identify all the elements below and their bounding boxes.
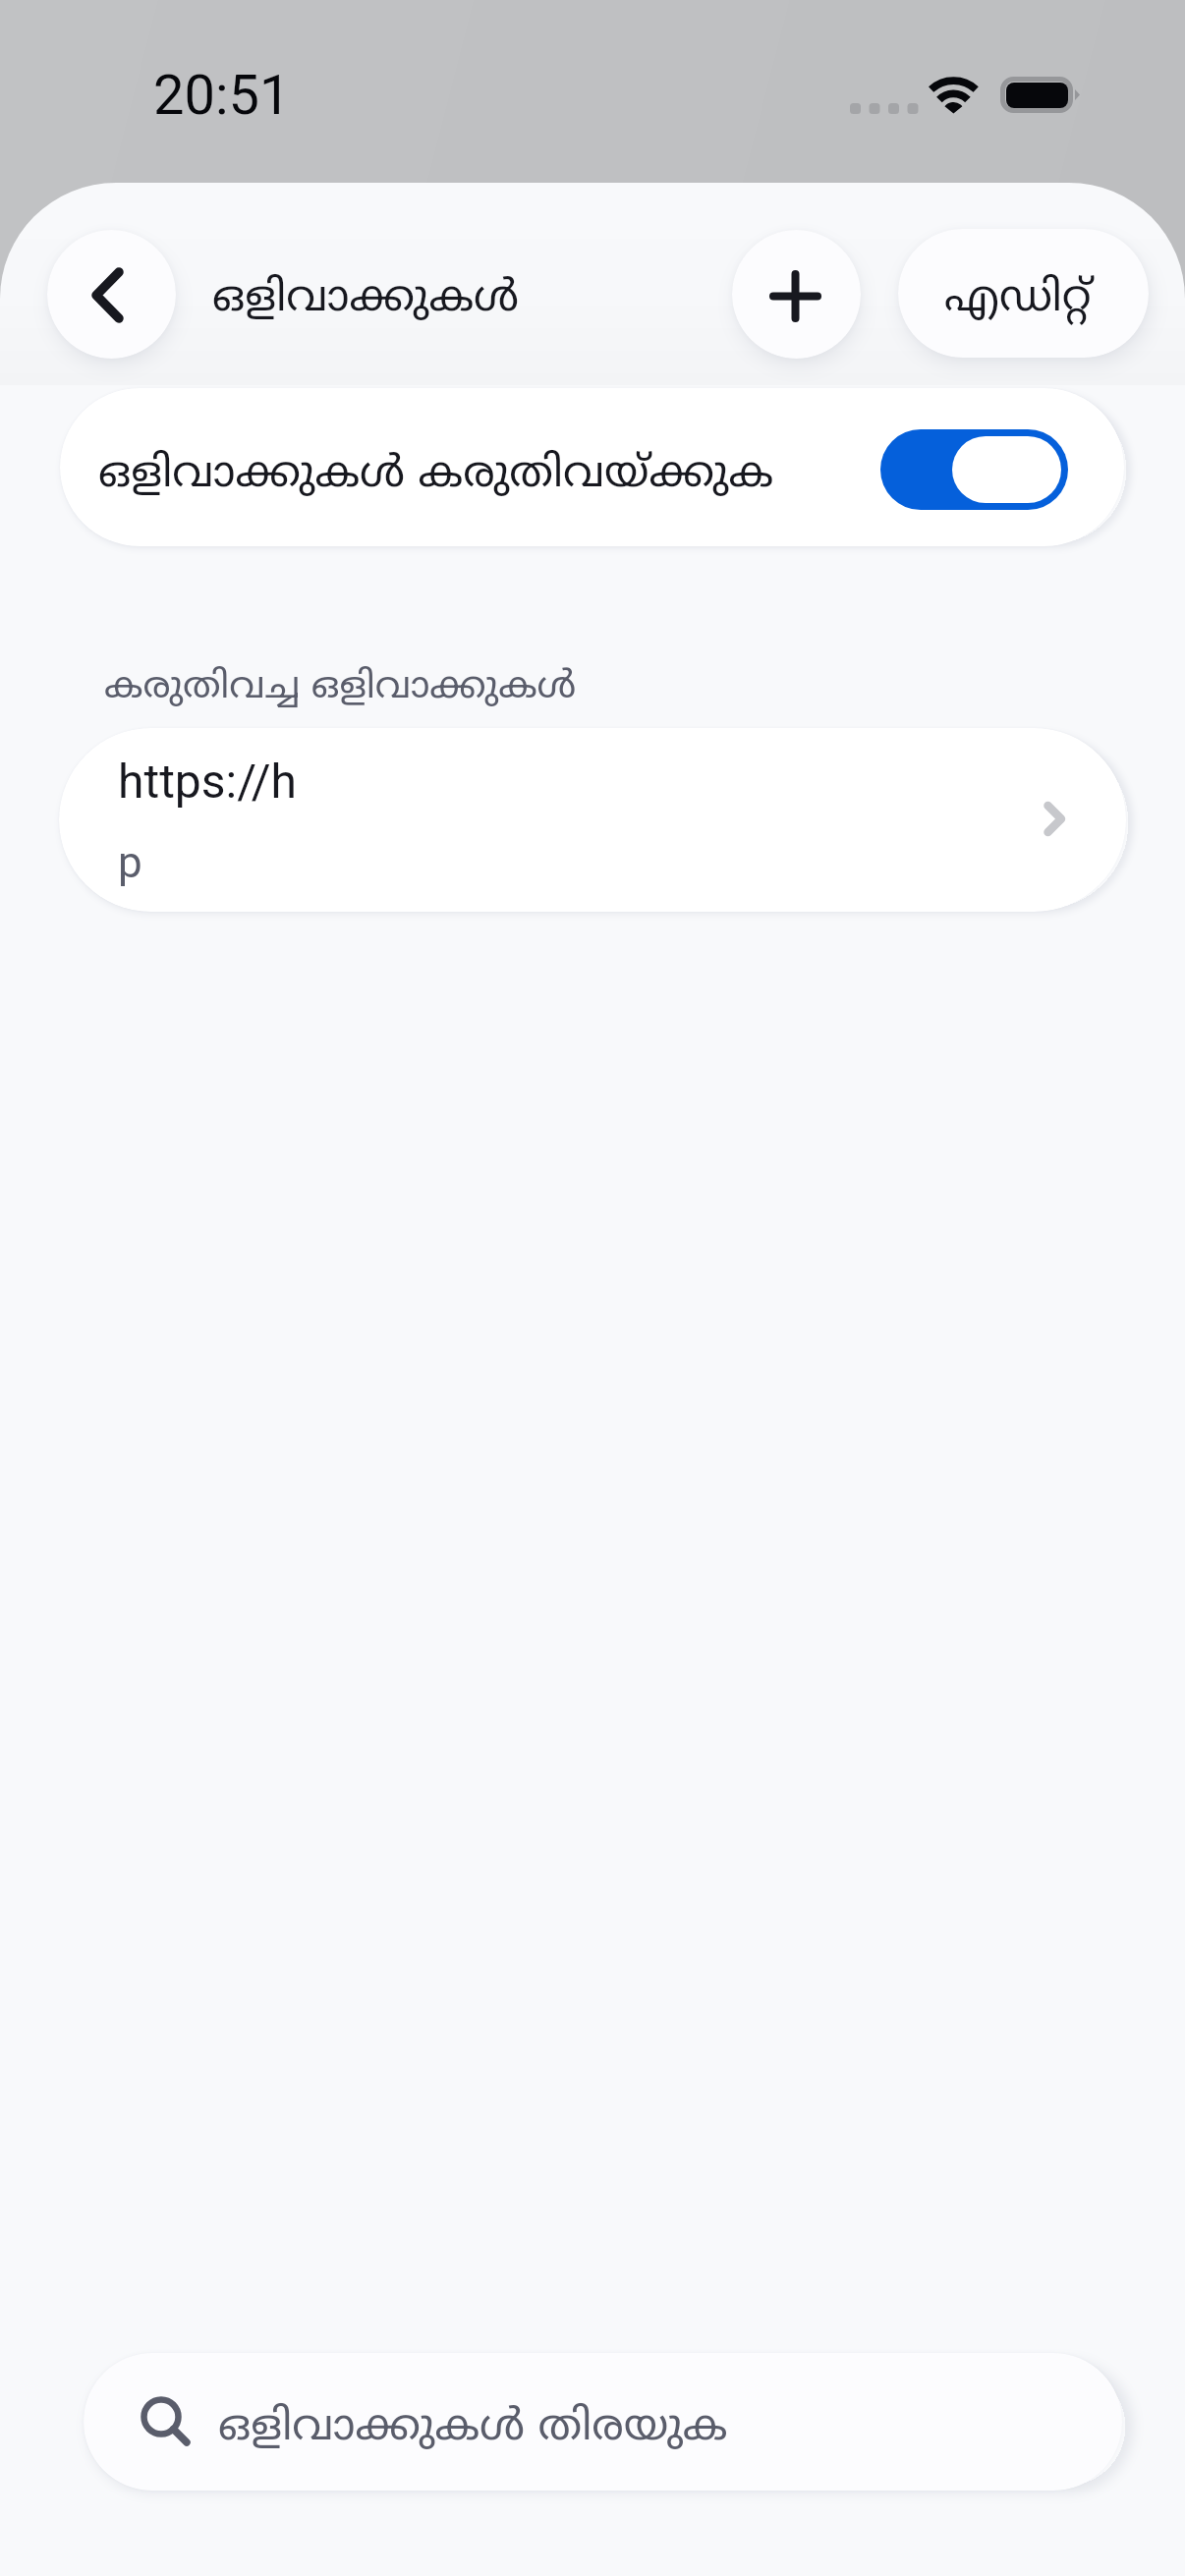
staticText: ഒളിവാക്കുകൾ — [212, 273, 520, 327]
button[interactable]: https://h — [59, 728, 1126, 912]
button[interactable]: Save passwords toggle, on — [880, 429, 1068, 510]
button[interactable]: ഒളിവാക്കുകൾ കരുതിവയ്ക്കുക — [60, 388, 1124, 546]
staticText: ഒളിവാക്കുകൾ തിരയുക — [218, 2402, 728, 2456]
staticText: ഒളിവാക്കുകൾ കരുതിവയ്ക്കുക — [98, 449, 774, 503]
staticText: p — [118, 837, 142, 888]
staticText: 20:51 — [153, 63, 291, 128]
staticText: https://h — [118, 754, 297, 809]
staticText: എഡിറ്റ് — [944, 273, 1092, 327]
button[interactable]: ഒളിവാക്കുകൾ തിരയുക — [84, 2353, 1122, 2491]
button[interactable]: Back — [47, 230, 176, 359]
staticText: കരുതിവച്ച ഒളിവാക്കുകൾ — [104, 665, 577, 711]
button[interactable]: എഡിറ്റ് — [898, 229, 1149, 358]
button[interactable]: Add — [732, 230, 861, 359]
